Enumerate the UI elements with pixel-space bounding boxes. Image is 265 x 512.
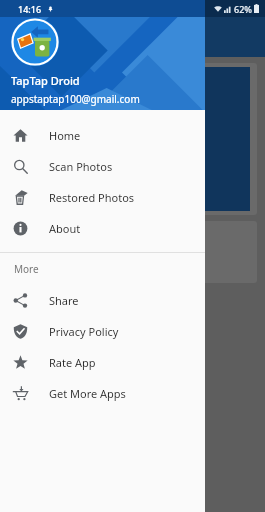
button[interactable]: Get More Apps [0, 378, 205, 409]
button[interactable]: Rate App [0, 347, 205, 378]
button[interactable]: Share [14, 297, 58, 341]
button[interactable]: Restored Photos [0, 182, 205, 213]
button[interactable]: Restored [8, 221, 257, 283]
button[interactable]: Share [0, 285, 205, 316]
staticText: Scan Photos [49, 159, 113, 174]
button[interactable]: Privacy Policy [0, 316, 205, 347]
staticText: 62% [234, 3, 252, 15]
staticText: Restored Photos [49, 190, 135, 205]
staticText: Home [49, 128, 81, 143]
button[interactable]: About [0, 213, 205, 244]
staticText: Get More Apps [49, 386, 126, 401]
staticText: About [49, 221, 81, 236]
staticText: 14:16 [18, 3, 42, 15]
staticText: Restored [14, 260, 57, 274]
staticText: appstaptap100@gmail.com [11, 92, 140, 106]
staticText: Rate App [49, 355, 96, 370]
button[interactable]: Scan Photos [0, 151, 205, 182]
staticText: Privacy Policy [49, 324, 119, 339]
button[interactable] [8, 63, 257, 215]
staticText: Share [49, 293, 79, 308]
button[interactable]: Home [0, 120, 205, 151]
staticText: More [14, 262, 39, 276]
staticText: Share [20, 345, 47, 359]
staticText: TapTap Droid [11, 73, 80, 88]
